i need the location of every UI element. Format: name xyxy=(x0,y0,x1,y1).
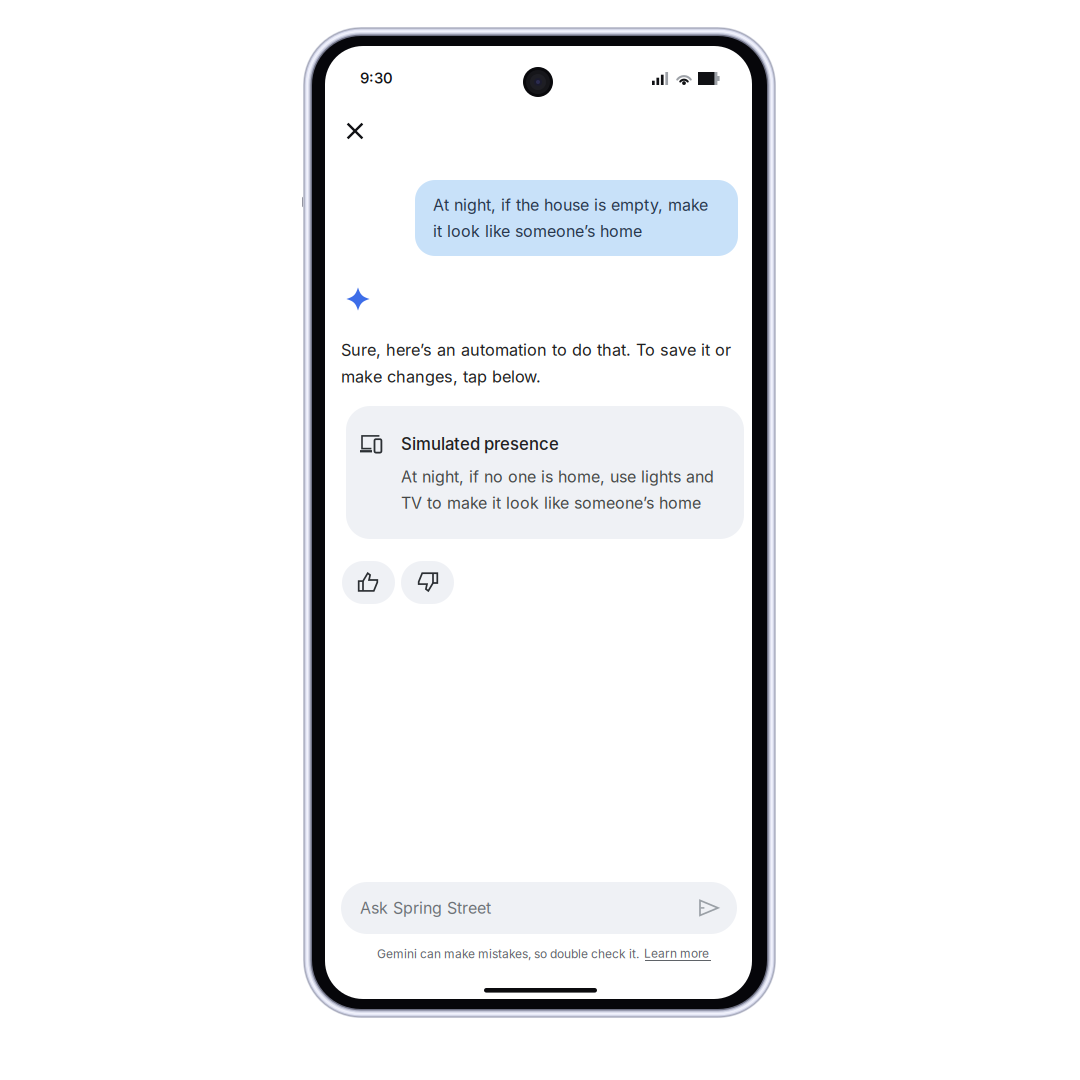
button[interactable]: Simulated presence xyxy=(346,406,744,539)
button[interactable]: Bad response xyxy=(401,561,454,604)
staticText: At night, if the house is empty, make it… xyxy=(433,195,708,241)
staticText: Sure, here’s an automation to do that. T… xyxy=(341,340,731,386)
button[interactable]: Learn more xyxy=(644,947,712,963)
staticText: Ask Spring Street xyxy=(360,898,491,918)
staticText: 9:30 xyxy=(360,69,393,87)
staticText: At night, if no one is home, use lights … xyxy=(401,467,714,513)
staticText: Learn more xyxy=(644,946,709,961)
staticText: Simulated presence xyxy=(401,434,559,454)
button[interactable]: Ask Spring Street xyxy=(341,882,737,934)
staticText: Gemini can make mistakes, so double chec… xyxy=(377,947,639,961)
button[interactable]: Close xyxy=(346,122,364,140)
button[interactable]: Good response xyxy=(342,561,395,604)
